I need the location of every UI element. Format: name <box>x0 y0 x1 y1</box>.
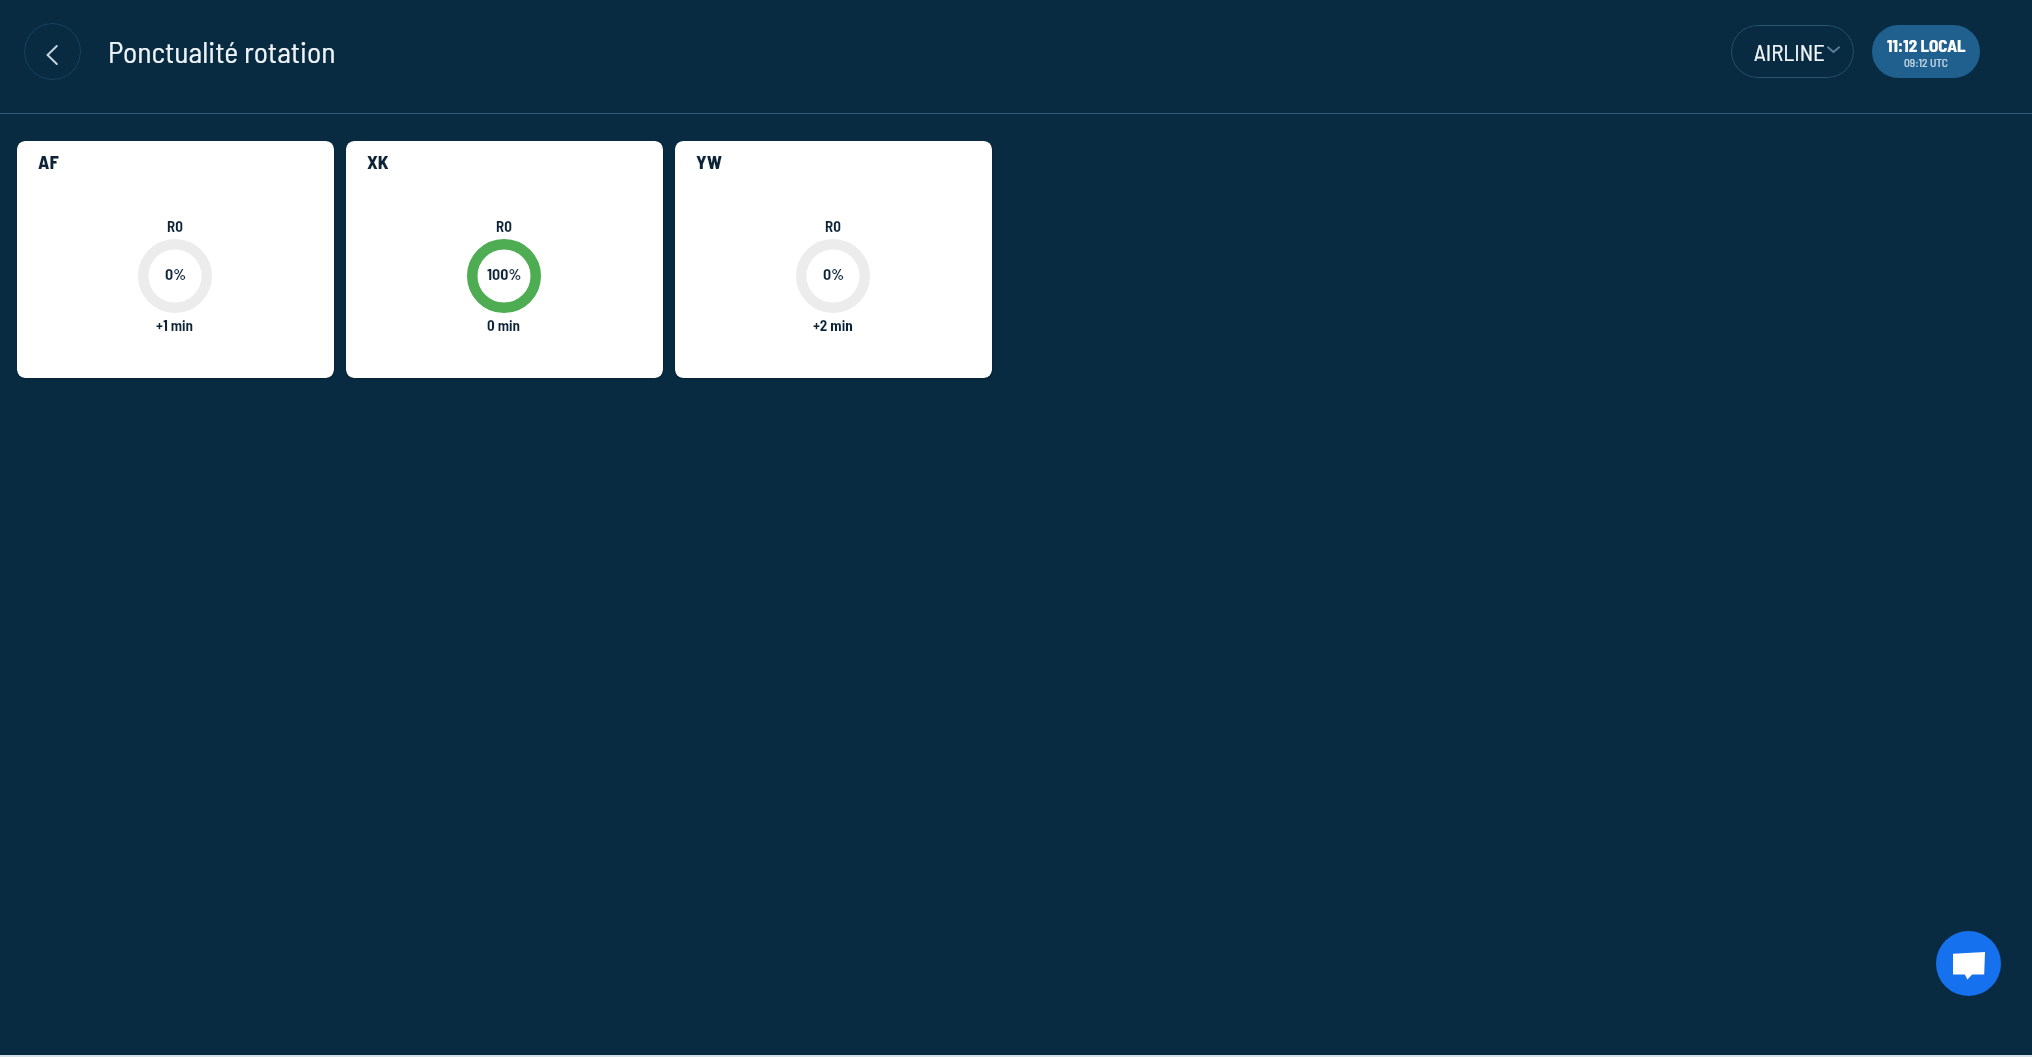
staticText: +2 min <box>813 316 853 334</box>
staticText: 0% <box>165 264 186 283</box>
staticText: R0 <box>496 217 512 235</box>
staticText: YW <box>696 150 722 173</box>
staticText: 11:12 LOCAL <box>1887 35 1966 55</box>
staticText: R0 <box>167 217 183 235</box>
staticText: 0% <box>823 264 844 283</box>
button[interactable]: AIRLINE <box>1731 25 1854 78</box>
staticText: 09:12 UTC <box>1904 55 1948 69</box>
button[interactable]: Back <box>24 23 81 80</box>
staticText: XK <box>367 150 389 173</box>
button[interactable]: AF <box>17 141 334 378</box>
staticText: 100% <box>487 264 522 283</box>
staticText: 0 min <box>487 316 521 334</box>
staticText: Ponctualité rotation <box>108 33 336 69</box>
staticText: AIRLINE <box>1754 38 1826 66</box>
button[interactable]: Open chat <box>1936 931 2001 996</box>
staticText: R0 <box>825 217 841 235</box>
button[interactable]: XK <box>346 141 663 378</box>
staticText: AF <box>38 150 59 173</box>
button[interactable]: 11:12 LOCAL <box>1872 25 1980 78</box>
staticText: +1 min <box>156 316 194 334</box>
button[interactable]: YW <box>675 141 992 378</box>
